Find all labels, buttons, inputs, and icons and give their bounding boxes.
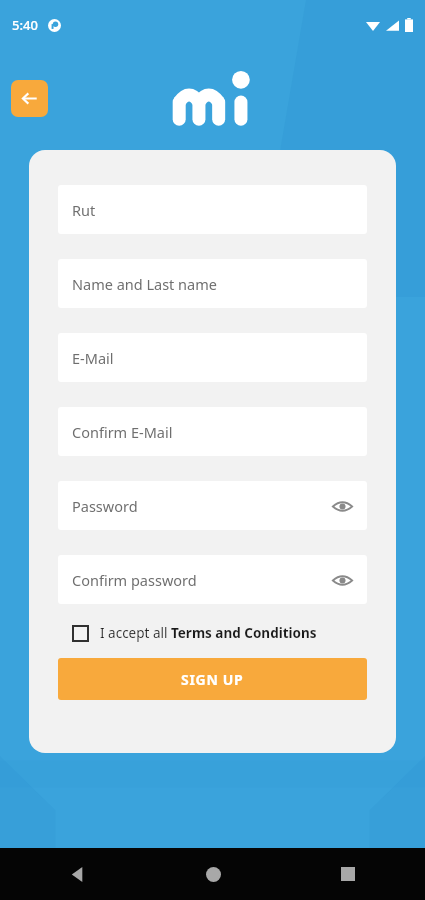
button[interactable]: Confirm E-Mail bbox=[58, 407, 367, 456]
staticText: Confirm password bbox=[72, 570, 197, 590]
button[interactable]: Toggle password visibility bbox=[329, 493, 355, 519]
button[interactable]: Name and Last name bbox=[58, 259, 367, 308]
staticText: SIGN UP bbox=[181, 670, 244, 689]
staticText: Name and Last name bbox=[72, 274, 217, 294]
button[interactable]: Back bbox=[11, 80, 48, 117]
button[interactable]: Recent apps bbox=[331, 857, 365, 891]
button[interactable]: Rut bbox=[58, 185, 367, 234]
button[interactable]: Password bbox=[58, 481, 367, 530]
button[interactable]: Back bbox=[60, 857, 94, 891]
button[interactable]: I accept all Terms and Conditions bbox=[72, 624, 353, 642]
button[interactable]: E-Mail bbox=[58, 333, 367, 382]
button[interactable]: Confirm password bbox=[58, 555, 367, 604]
button[interactable]: Toggle password visibility bbox=[329, 567, 355, 593]
staticText: Confirm E-Mail bbox=[72, 422, 173, 442]
staticText: E-Mail bbox=[72, 348, 114, 368]
staticText: Rut bbox=[72, 200, 96, 220]
staticText: 5:40 bbox=[12, 16, 38, 34]
button[interactable]: Home bbox=[196, 857, 230, 891]
staticText: Password bbox=[72, 496, 138, 516]
button[interactable]: SIGN UP bbox=[58, 658, 367, 700]
staticText: I accept all Terms and Conditions bbox=[100, 624, 317, 642]
